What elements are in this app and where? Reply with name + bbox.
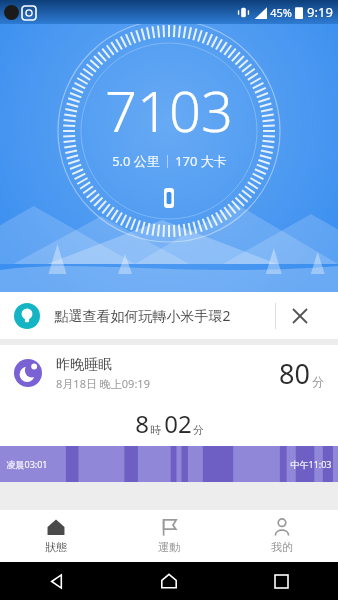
button[interactable]: 昨晚睡眠 — [0, 345, 338, 482]
staticText: 我的 — [271, 540, 293, 554]
staticText: 昨晚睡眠 — [56, 356, 112, 374]
staticText: 7103 — [105, 72, 233, 148]
staticText: 02 — [164, 407, 192, 440]
button[interactable]: Recents — [225, 562, 338, 600]
staticText: 運動 — [158, 540, 180, 554]
staticText: 8 — [135, 407, 149, 440]
staticText: 9:19 — [307, 3, 333, 21]
staticText: 8月18日 晚上09:19 — [56, 376, 150, 391]
staticText: 凌晨03:01 — [6, 458, 48, 470]
staticText: 中午11:03 — [290, 458, 332, 470]
staticText: 170 大卡 — [175, 152, 227, 170]
button[interactable]: Home — [112, 562, 225, 600]
button[interactable]: Back — [0, 562, 112, 600]
button[interactable]: 7103 — [56, 18, 282, 244]
staticText: 80 — [279, 355, 310, 392]
staticText: 點選查看如何玩轉小米手環2 — [54, 306, 231, 325]
button[interactable]: Close — [276, 292, 324, 339]
button[interactable]: 我的 — [225, 510, 338, 562]
staticText: 分 — [312, 374, 324, 389]
button[interactable]: 狀態 — [0, 510, 112, 562]
button[interactable]: 運動 — [112, 510, 225, 562]
staticText: 時 — [150, 423, 161, 437]
button[interactable]: 點選查看如何玩轉小米手環2 — [0, 292, 338, 339]
staticText: 5.0 公里 — [112, 152, 160, 170]
staticText: 分 — [193, 423, 204, 437]
staticText: 45% — [270, 5, 292, 20]
staticText: 狀態 — [45, 540, 67, 554]
